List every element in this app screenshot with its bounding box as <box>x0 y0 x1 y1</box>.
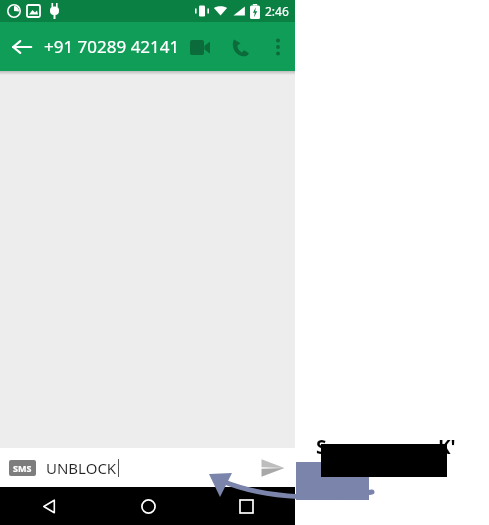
staticText: UNBLOCK <box>46 458 117 478</box>
staticText: 2:46 <box>265 3 289 19</box>
button[interactable]: Video call <box>180 27 220 67</box>
staticText: S <box>316 434 327 460</box>
staticText: K' <box>438 434 456 460</box>
button[interactable]: Back <box>0 25 44 69</box>
button[interactable]: Home <box>99 487 197 525</box>
staticText: SMS <box>13 462 32 474</box>
button[interactable]: Send <box>251 448 295 487</box>
button[interactable]: Recent apps <box>197 487 295 525</box>
button[interactable]: Back <box>0 487 99 525</box>
button[interactable]: SMS <box>13 462 32 474</box>
button[interactable]: Call <box>220 27 260 67</box>
button[interactable]: More options <box>260 29 295 65</box>
staticText: +91 70289 42141 <box>44 35 180 58</box>
